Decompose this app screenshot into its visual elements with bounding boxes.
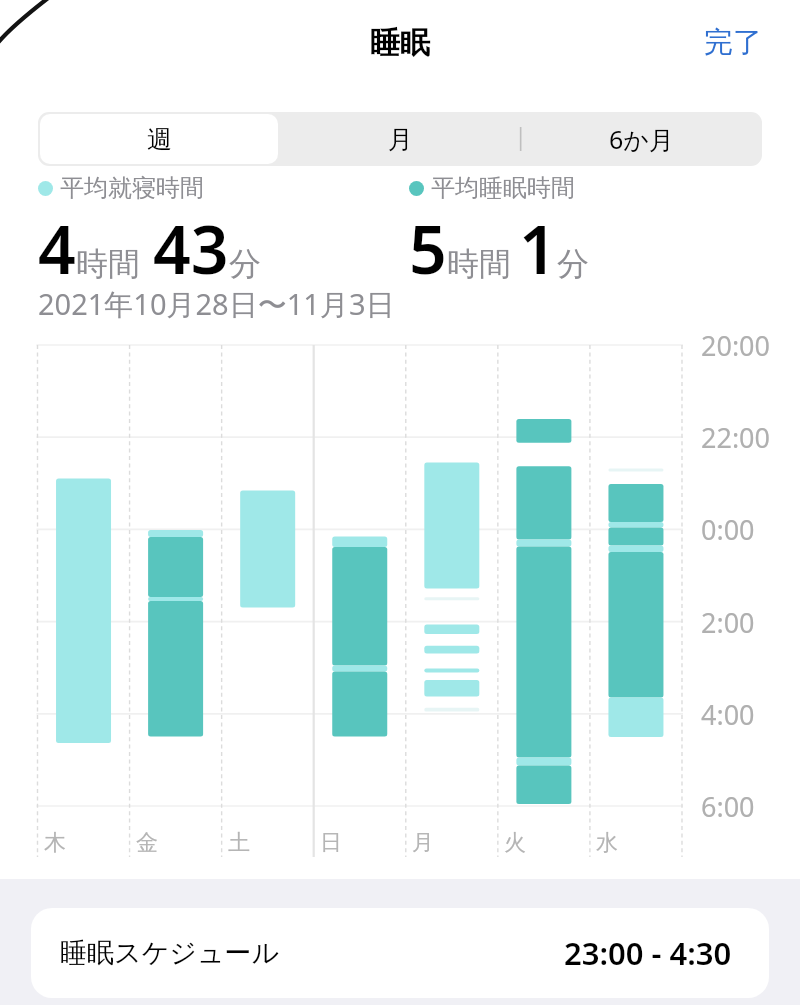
staticText: 月 <box>412 829 434 857</box>
staticText: 土 <box>228 829 250 857</box>
staticText: 時間 <box>447 244 511 284</box>
button[interactable]: 月 <box>280 112 521 166</box>
staticText: 20:00 <box>701 327 771 364</box>
staticText: 平均睡眠時間 <box>431 173 575 203</box>
staticText: 月 <box>388 124 413 155</box>
staticText: 1 <box>519 203 557 293</box>
staticText: 木 <box>44 829 66 857</box>
staticText: 週 <box>147 124 172 155</box>
staticText: 6:00 <box>701 788 755 825</box>
button[interactable]: 睡眠スケジュール <box>31 908 769 998</box>
staticText: 睡眠 <box>370 24 430 62</box>
staticText: 日 <box>320 829 342 857</box>
staticText: 2:00 <box>701 604 755 641</box>
staticText: 4:00 <box>701 696 755 733</box>
staticText: 睡眠スケジュール <box>60 936 280 970</box>
staticText: 分 <box>229 244 261 284</box>
staticText: 43 <box>153 203 229 293</box>
button[interactable]: 週 <box>40 114 278 164</box>
staticText: 火 <box>504 829 526 857</box>
staticText: 水 <box>596 829 618 857</box>
staticText: 金 <box>136 829 158 857</box>
staticText: 0:00 <box>701 511 755 548</box>
staticText: 5 <box>409 203 447 293</box>
staticText: 分 <box>557 244 589 284</box>
staticText: 22:00 <box>701 419 771 456</box>
button[interactable]: 完了 <box>704 24 762 61</box>
staticText: 6か月 <box>609 122 674 156</box>
staticText: 2021年10月28日〜11月3日 <box>38 284 395 324</box>
button[interactable]: 6か月 <box>521 112 762 166</box>
staticText: 23:00 - 4:30 <box>564 932 732 974</box>
staticText: 時間 <box>76 244 140 284</box>
staticText: 平均就寝時間 <box>60 173 204 203</box>
staticText: 4 <box>38 203 76 293</box>
staticText: 完了 <box>704 24 762 61</box>
